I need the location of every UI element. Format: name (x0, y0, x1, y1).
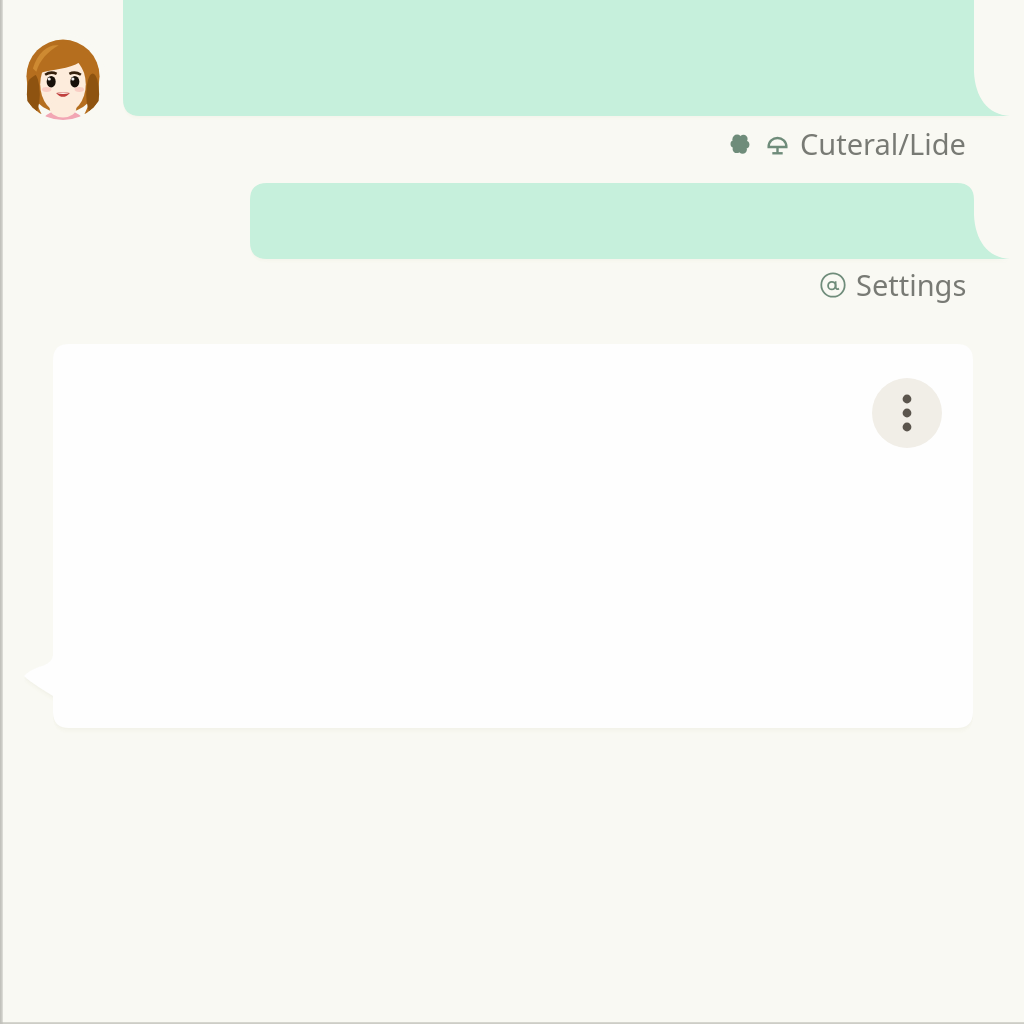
staticText: Cuteral/Lide (800, 124, 966, 163)
button[interactable] (250, 183, 1010, 259)
button[interactable]: More options (872, 378, 942, 448)
button[interactable]: Profile avatar (20, 34, 106, 120)
staticText: Settings (856, 265, 967, 304)
button[interactable]: Cuteral/Lide (730, 124, 966, 163)
button[interactable]: Settings (820, 265, 967, 304)
button[interactable] (123, 0, 1010, 116)
